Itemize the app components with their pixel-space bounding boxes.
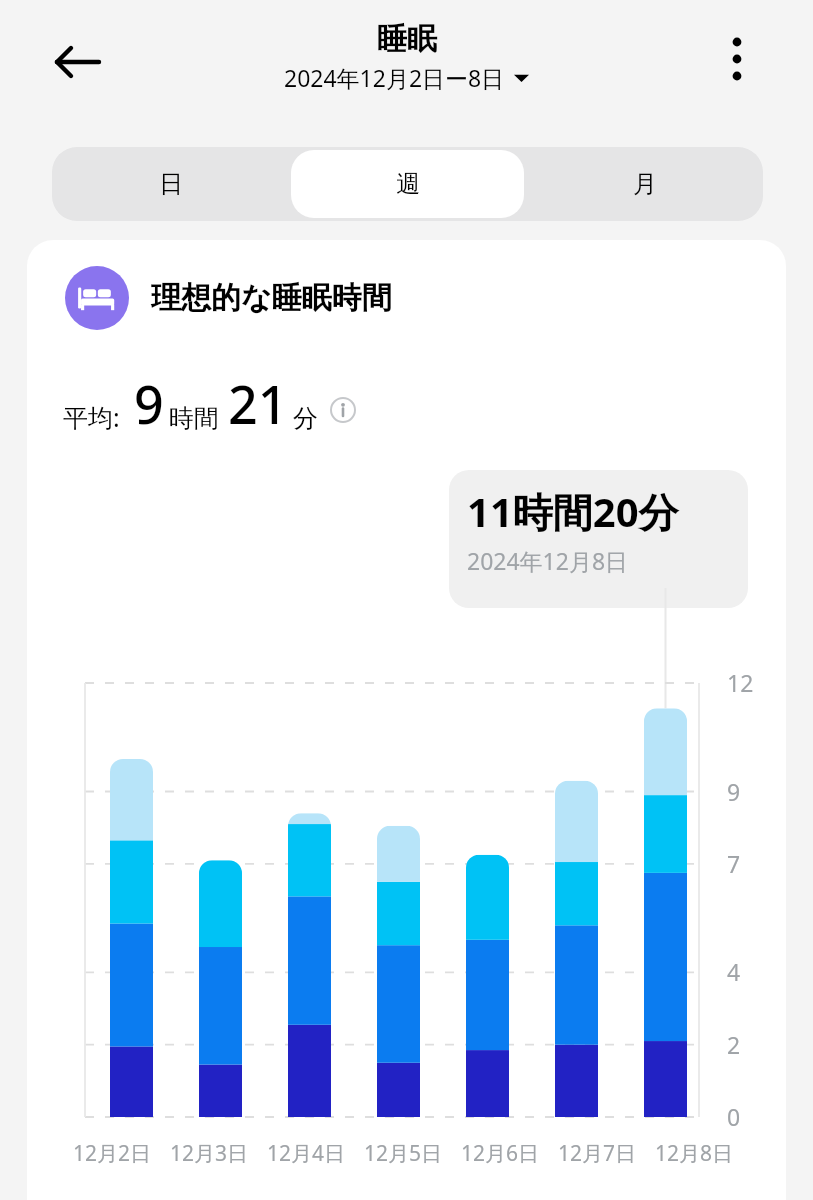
button[interactable]: 2024年12月2日ー8日 [284,62,529,93]
staticText: 2024年12月2日ー8日 [284,62,505,93]
staticText: 日 [159,169,183,199]
staticText: 7 [727,848,741,879]
button[interactable]: Back [42,26,114,98]
staticText: 12月4日 [267,1139,346,1168]
button[interactable]: Info [330,397,356,423]
staticText: 9 [134,368,164,439]
staticText: 分 [293,403,318,434]
staticText: 12月7日 [558,1139,637,1168]
button[interactable]: 週 [291,150,524,218]
staticText: 月 [633,169,657,199]
staticText: 9 [727,776,741,807]
staticText: 12月5日 [364,1139,443,1168]
staticText: 21 [228,368,288,439]
staticText: 12 [727,667,754,698]
staticText: 2024年12月8日 [467,545,629,576]
button[interactable]: 理想的な睡眠時間 [65,266,392,330]
staticText: 11時間20分 [467,484,679,539]
staticText: 12月3日 [170,1139,249,1168]
button[interactable]: 日 [54,150,287,218]
staticText: 12月2日 [73,1139,152,1168]
button[interactable]: More options [704,26,770,92]
staticText: 0 [727,1101,741,1132]
staticText: 時間 [169,403,219,434]
button[interactable]: 月 [528,150,761,218]
staticText: 理想的な睡眠時間 [151,279,392,317]
staticText: 12月6日 [461,1139,540,1168]
staticText: 2 [727,1029,741,1060]
staticText: 平均: [63,400,120,434]
button[interactable]: 11時間20分 [449,470,748,608]
staticText: 12月8日 [655,1139,734,1168]
staticText: 4 [727,956,741,987]
staticText: 週 [396,169,420,199]
staticText: 睡眠 [377,20,437,58]
